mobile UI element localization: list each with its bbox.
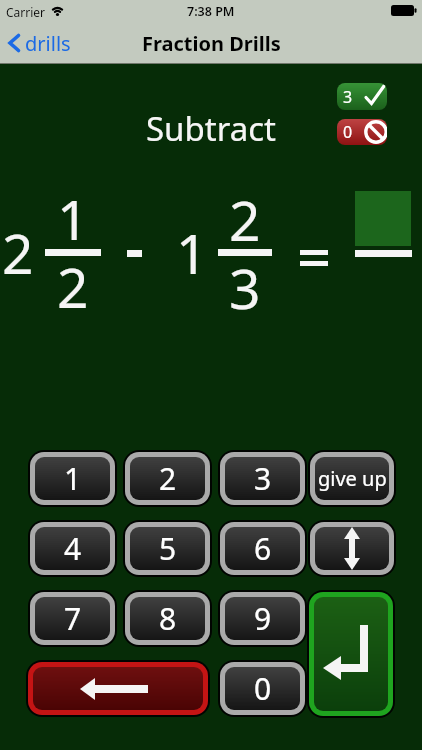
staticText: 4 [64,528,82,569]
staticText: 2 [57,249,89,324]
staticText: Subtract [146,106,276,151]
button[interactable]: 4 [28,520,117,577]
staticText: 3 [343,86,353,108]
button[interactable]: give up [308,450,396,507]
staticText: 3 [229,250,261,325]
button[interactable]: 3 [337,83,387,110]
staticText: 7 [64,598,82,639]
button[interactable]: 0 [218,660,307,717]
button[interactable]: 9 [218,590,307,647]
button[interactable]: 6 [218,520,307,577]
staticText: 7:38 PM [187,3,235,20]
staticText: 1 [64,458,82,499]
staticText: 5 [159,528,177,569]
staticText: 2 [159,458,177,499]
button[interactable]: 7 [28,590,117,647]
button[interactable]: 5 [123,520,212,577]
button[interactable]: drills [8,22,71,64]
button[interactable] [307,590,395,718]
staticText: 3 [254,458,272,499]
button[interactable] [308,520,396,577]
staticText: 2 [2,215,34,290]
staticText: 1 [176,215,208,290]
staticText: Carrier [6,4,46,20]
button[interactable]: 8 [123,590,212,647]
button[interactable] [26,660,210,717]
staticText: 9 [254,598,272,639]
staticText: 0 [254,668,272,709]
staticText: give up [318,465,387,492]
button[interactable]: 0 [337,119,387,145]
button[interactable]: 2 [123,450,212,507]
button[interactable]: 1 [28,450,117,507]
staticText: Fraction Drills [142,30,281,57]
staticText: 1 [57,181,89,256]
button[interactable]: 3 [218,450,307,507]
staticText: 6 [254,528,272,569]
staticText: 8 [159,598,177,639]
staticText: 2 [229,182,261,257]
staticText: 0 [343,121,353,143]
staticText: drills [25,30,71,57]
